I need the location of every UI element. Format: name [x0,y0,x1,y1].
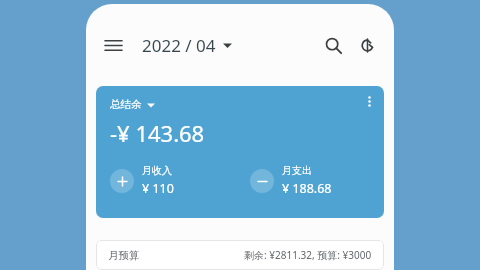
staticText: ¥ 188.68 [282,180,332,197]
staticText: -¥ 143.68 [110,118,205,148]
staticText: 月收入 [142,164,172,177]
staticText: 月支出 [282,164,312,177]
button[interactable]: Sync [350,28,384,62]
button[interactable]: Menu [96,28,130,62]
staticText: ¥ 110 [142,180,174,197]
staticText: 2022 / 04 [142,34,216,57]
button[interactable]: Search [316,28,350,62]
button[interactable]: More options [356,88,382,114]
button[interactable]: More options [96,86,384,218]
button[interactable]: 月收入 [110,164,238,197]
button[interactable]: 月支出 [250,164,384,197]
staticText: 剩余: ¥2811.32, 预算: ¥3000 [244,248,372,262]
button[interactable]: 总结余 [110,98,155,111]
staticText: 总结余 [110,98,142,111]
button[interactable]: 2022 / 04 [142,34,232,57]
button[interactable]: 月预算 [96,240,384,270]
staticText: 月预算 [108,249,140,262]
